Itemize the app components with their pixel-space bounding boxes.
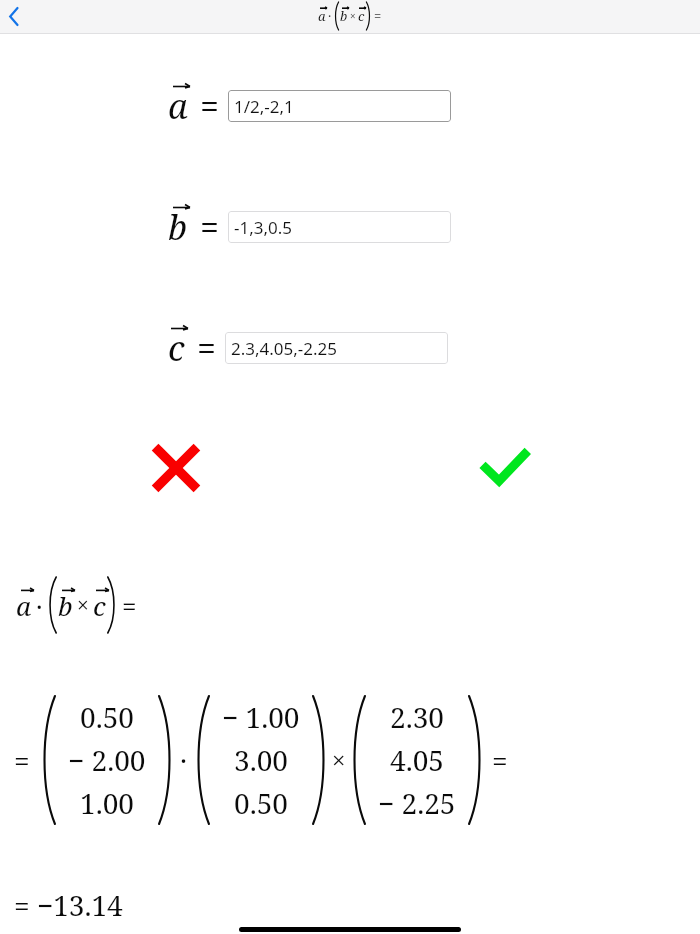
staticText: =	[374, 7, 382, 25]
staticText: =	[200, 83, 220, 129]
staticText: ·	[328, 7, 332, 25]
button[interactable]: Clear	[141, 433, 211, 503]
button[interactable]: Back	[0, 0, 36, 33]
staticText: -1,3,0.5	[234, 216, 293, 239]
staticText: =	[200, 204, 220, 250]
staticText: 2.30	[390, 698, 444, 736]
staticText: a	[318, 7, 326, 25]
staticText: 1.00	[80, 784, 134, 822]
button[interactable]: Submit	[470, 433, 540, 503]
staticText: c	[93, 588, 106, 623]
staticText: 4.05	[390, 741, 444, 779]
staticText: b	[58, 588, 73, 623]
staticText: =	[492, 741, 508, 779]
staticText: − 1.00	[222, 698, 300, 736]
staticText: 2.3,4.05,-2.25	[231, 337, 338, 360]
staticText: 3.00	[234, 741, 288, 779]
staticText: a	[16, 588, 32, 623]
staticText: 1/2,-2,1	[234, 95, 294, 118]
staticText: c	[358, 7, 365, 25]
staticText: ·	[180, 741, 188, 779]
staticText: =	[122, 588, 137, 623]
staticText: 0.50	[80, 698, 134, 736]
staticText: ×	[77, 591, 89, 620]
staticText: = −13.14	[14, 886, 123, 924]
button[interactable]: 2.3,4.05,-2.25	[225, 332, 448, 364]
button[interactable]: -1,3,0.5	[228, 211, 451, 243]
staticText: b	[168, 204, 188, 250]
staticText: 0.50	[234, 784, 288, 822]
staticText: =	[197, 325, 217, 371]
staticText: − 2.00	[68, 741, 146, 779]
button[interactable]: 1/2,-2,1	[228, 90, 451, 122]
staticText: − 2.25	[378, 784, 456, 822]
staticText: =	[14, 741, 30, 779]
staticText: ×	[350, 9, 356, 23]
staticText: a	[168, 83, 188, 129]
staticText: b	[340, 7, 348, 25]
staticText: ·	[36, 588, 43, 623]
staticText: ×	[332, 743, 346, 776]
staticText: c	[168, 325, 185, 371]
